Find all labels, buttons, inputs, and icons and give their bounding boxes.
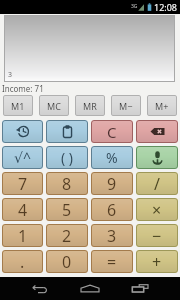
button[interactable]: Home xyxy=(78,277,102,300)
button[interactable]: Recent apps xyxy=(128,277,152,300)
button[interactable]: / xyxy=(136,172,178,195)
staticText: 0 xyxy=(62,251,72,273)
staticText: MC xyxy=(47,100,61,112)
button[interactable]: × xyxy=(136,198,178,221)
button[interactable]: 2 xyxy=(46,224,88,247)
staticText: 1 xyxy=(18,225,28,247)
staticText: / xyxy=(154,173,160,195)
button[interactable]: MC xyxy=(39,95,69,116)
staticText: 8 xyxy=(62,173,72,195)
button[interactable]: √^ xyxy=(2,146,43,169)
staticText: 7 xyxy=(18,173,28,195)
button[interactable]: 4 xyxy=(2,198,43,221)
button[interactable]: % xyxy=(91,146,133,169)
button[interactable]: Backspace xyxy=(136,120,178,143)
staticText: 3 xyxy=(8,70,13,80)
staticText: ( ) xyxy=(61,148,74,167)
staticText: 9 xyxy=(107,173,117,195)
button[interactable]: 6 xyxy=(91,198,133,221)
button[interactable]: + xyxy=(136,250,178,273)
button[interactable]: 7 xyxy=(2,172,43,195)
button[interactable]: 8 xyxy=(46,172,88,195)
button[interactable]: . xyxy=(2,250,43,273)
button[interactable]: Clipboard xyxy=(46,120,88,143)
staticText: Income: 71 xyxy=(2,83,44,94)
staticText: % xyxy=(106,148,118,167)
staticText: C xyxy=(107,122,117,142)
button[interactable]: M1 xyxy=(3,95,33,116)
staticText: + xyxy=(152,251,162,273)
button[interactable]: History xyxy=(2,120,43,143)
staticText: M1 xyxy=(11,100,25,112)
staticText: − xyxy=(152,225,162,247)
button[interactable]: MR xyxy=(75,95,105,116)
button[interactable]: Back xyxy=(28,277,52,300)
staticText: . xyxy=(20,251,25,273)
button[interactable]: ( ) xyxy=(46,146,88,169)
button[interactable]: M− xyxy=(111,95,141,116)
staticText: 5 xyxy=(62,199,72,221)
button[interactable]: 0 xyxy=(46,250,88,273)
staticText: 3G xyxy=(131,3,138,10)
button[interactable]: 3 xyxy=(91,224,133,247)
staticText: M− xyxy=(119,100,133,112)
staticText: 3 xyxy=(107,225,117,247)
staticText: M+ xyxy=(155,100,169,112)
button[interactable]: M+ xyxy=(147,95,177,116)
button[interactable]: − xyxy=(136,224,178,247)
staticText: √^ xyxy=(14,148,31,167)
button[interactable]: 9 xyxy=(91,172,133,195)
staticText: 6 xyxy=(107,199,117,221)
staticText: 4 xyxy=(18,199,28,221)
button[interactable]: Voice input xyxy=(136,146,178,169)
button[interactable]: 5 xyxy=(46,198,88,221)
button[interactable]: = xyxy=(91,250,133,273)
button[interactable]: C xyxy=(91,120,133,143)
staticText: 2 xyxy=(62,225,72,247)
staticText: 12:08 xyxy=(154,1,178,13)
staticText: MR xyxy=(83,100,97,112)
staticText: × xyxy=(152,199,162,221)
staticText: = xyxy=(107,251,117,273)
button[interactable]: 1 xyxy=(2,224,43,247)
